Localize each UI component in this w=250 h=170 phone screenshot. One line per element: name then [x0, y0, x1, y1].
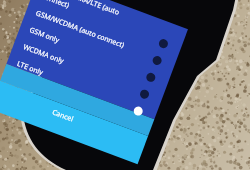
button[interactable]: Phone showing network mode dialog — [0, 0, 250, 170]
